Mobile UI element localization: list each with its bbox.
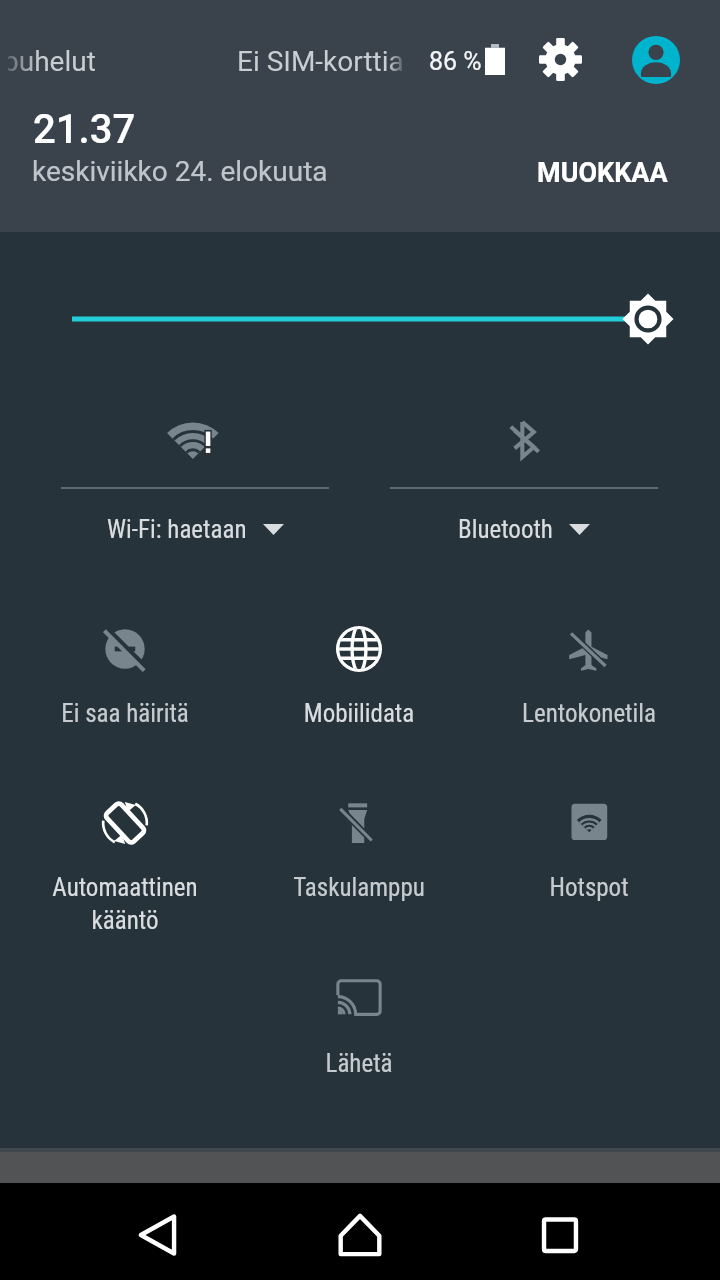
button[interactable]: Hotspot (479, 783, 699, 903)
button[interactable]: Ei saa häiritä (15, 609, 235, 729)
staticText: 21.37 (33, 106, 136, 153)
staticText: MUOKKAA (537, 157, 668, 189)
button[interactable]: Settings (534, 33, 586, 85)
button[interactable]: Lähetä (249, 959, 469, 1079)
staticText: Taskulamppu (249, 873, 469, 902)
button[interactable]: Taskulamppu (249, 783, 469, 903)
staticText: Bluetooth (458, 515, 553, 544)
button[interactable]: Wi-Fi: haetaan (61, 405, 329, 565)
button[interactable]: Mobiilidata (249, 609, 469, 729)
button[interactable]: MUOKKAA (537, 157, 668, 189)
staticText: 86 % (429, 47, 482, 76)
staticText: Lentokonetila (479, 699, 699, 728)
button[interactable]: Automaattinen kääntö (15, 783, 235, 903)
button[interactable]: User account (632, 36, 680, 84)
button[interactable]: Recent apps (512, 1186, 608, 1280)
button[interactable]: Back (112, 1186, 208, 1280)
staticText: Automaattinen kääntö (15, 873, 235, 935)
button[interactable]: Bluetooth (390, 405, 658, 565)
button[interactable]: Lentokonetila (479, 609, 699, 729)
staticText: Ei saa häiritä (15, 699, 235, 728)
staticText: puhelut (8, 45, 96, 78)
staticText: Wi-Fi: haetaan (107, 515, 247, 544)
staticText: Ei SIM-korttia (237, 45, 404, 78)
button[interactable]: Home (312, 1186, 408, 1280)
staticText: Lähetä (249, 1049, 469, 1078)
staticText: keskiviikko 24. elokuuta (32, 155, 328, 188)
staticText: Mobiilidata (249, 699, 469, 728)
staticText: Hotspot (479, 873, 699, 902)
